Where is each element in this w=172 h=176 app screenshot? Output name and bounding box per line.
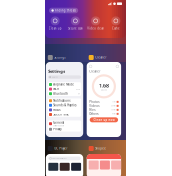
staticText: Notifications	[53, 99, 70, 102]
staticText: Settings	[48, 68, 65, 74]
button[interactable]: Finding threats	[45, 0, 126, 38]
staticText: Videos	[89, 104, 99, 108]
button[interactable]: Clean up now	[90, 117, 118, 122]
staticText: 1.68	[99, 82, 109, 89]
staticText: Screen Time	[53, 113, 69, 116]
button[interactable]: Settings	[46, 62, 83, 137]
button[interactable]: search or enter url	[46, 154, 83, 176]
staticText: UC Player	[54, 147, 67, 150]
button[interactable]: Focus	[48, 108, 81, 112]
staticText: 96 MB	[112, 113, 116, 115]
staticText: Sounds & Haptics	[53, 103, 76, 107]
button[interactable]: Airplane Mode	[48, 82, 81, 87]
staticText: search or enter url	[52, 157, 66, 159]
staticText: Secure scan	[68, 27, 83, 30]
button[interactable]: Settings	[48, 55, 83, 60]
staticText: Bluetooth	[53, 92, 68, 95]
button[interactable]: Screen Time	[48, 112, 81, 117]
button[interactable]: Wi-Fi	[48, 87, 81, 91]
button[interactable]: Shopee	[89, 146, 121, 151]
button[interactable]: Bluetooth	[48, 91, 81, 96]
button[interactable]: Clean up	[45, 16, 65, 30]
button[interactable]: Secure scan	[65, 16, 85, 30]
staticText: Files	[89, 108, 95, 112]
staticText: Video clean	[87, 27, 104, 30]
button[interactable]: Cleaner	[87, 62, 121, 137]
staticText: Home	[76, 88, 80, 90]
button[interactable]: Video clean	[85, 16, 106, 30]
staticText: Privacy	[53, 127, 61, 131]
staticText: Search	[52, 76, 58, 78]
staticText: Wi-Fi	[53, 87, 59, 91]
button[interactable]: General	[48, 120, 81, 127]
staticText: Software update	[53, 125, 64, 126]
staticText: Others	[89, 112, 98, 116]
button[interactable]	[87, 154, 121, 176]
button[interactable]: Sounds & Haptics	[48, 103, 81, 108]
staticText: 180 MB	[111, 109, 116, 111]
staticText: Cleaner	[89, 70, 100, 73]
staticText: Cache	[112, 27, 120, 30]
staticText: Clean up now	[93, 118, 114, 122]
staticText: General	[53, 121, 64, 124]
staticText: 320 MB	[111, 105, 116, 107]
staticText: Shopee	[95, 147, 106, 150]
staticText: Cleaner	[95, 56, 106, 59]
staticText: Settings	[54, 56, 65, 59]
button[interactable]: UC Player	[48, 146, 83, 151]
staticText: 1.1 GB	[112, 101, 116, 103]
button[interactable]: Notifications	[48, 98, 81, 103]
staticText: Focus	[53, 108, 60, 112]
button[interactable]: Privacy	[48, 127, 81, 132]
staticText: On	[78, 93, 80, 95]
staticText: Photos	[89, 100, 99, 104]
button[interactable]: Cleaner	[89, 55, 121, 60]
staticText: Clean up	[49, 27, 62, 30]
staticText: Finding threats	[55, 9, 76, 12]
staticText: Airplane Mode	[53, 83, 74, 86]
button[interactable]: Cache	[106, 16, 126, 30]
